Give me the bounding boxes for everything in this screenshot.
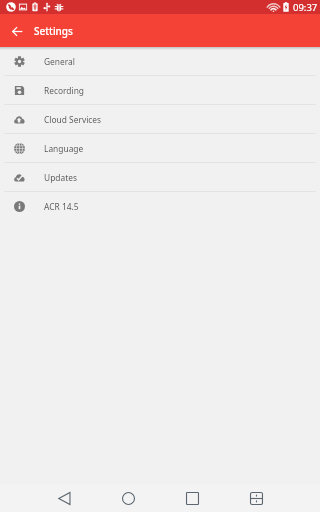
button[interactable]: Home [116, 486, 140, 510]
button[interactable]: Updates [0, 163, 320, 191]
button[interactable]: Split screen [244, 486, 268, 510]
button[interactable]: Cloud Services [0, 105, 320, 133]
button[interactable]: Recording [0, 76, 320, 104]
button[interactable]: ACR 14.5 [0, 192, 320, 220]
staticText: 09:37 [293, 1, 318, 14]
staticText: Settings [34, 24, 73, 38]
staticText: Language [44, 143, 84, 154]
staticText: Cloud Services [44, 114, 102, 125]
button[interactable]: General [0, 47, 320, 75]
button[interactable]: Language [0, 134, 320, 162]
button[interactable]: Back [0, 15, 34, 47]
staticText: ACR 14.5 [44, 201, 79, 212]
button[interactable]: Recent apps [180, 486, 204, 510]
staticText: General [44, 56, 75, 67]
button[interactable]: Back [52, 486, 76, 510]
staticText: Recording [44, 85, 85, 96]
staticText: Updates [44, 172, 77, 183]
